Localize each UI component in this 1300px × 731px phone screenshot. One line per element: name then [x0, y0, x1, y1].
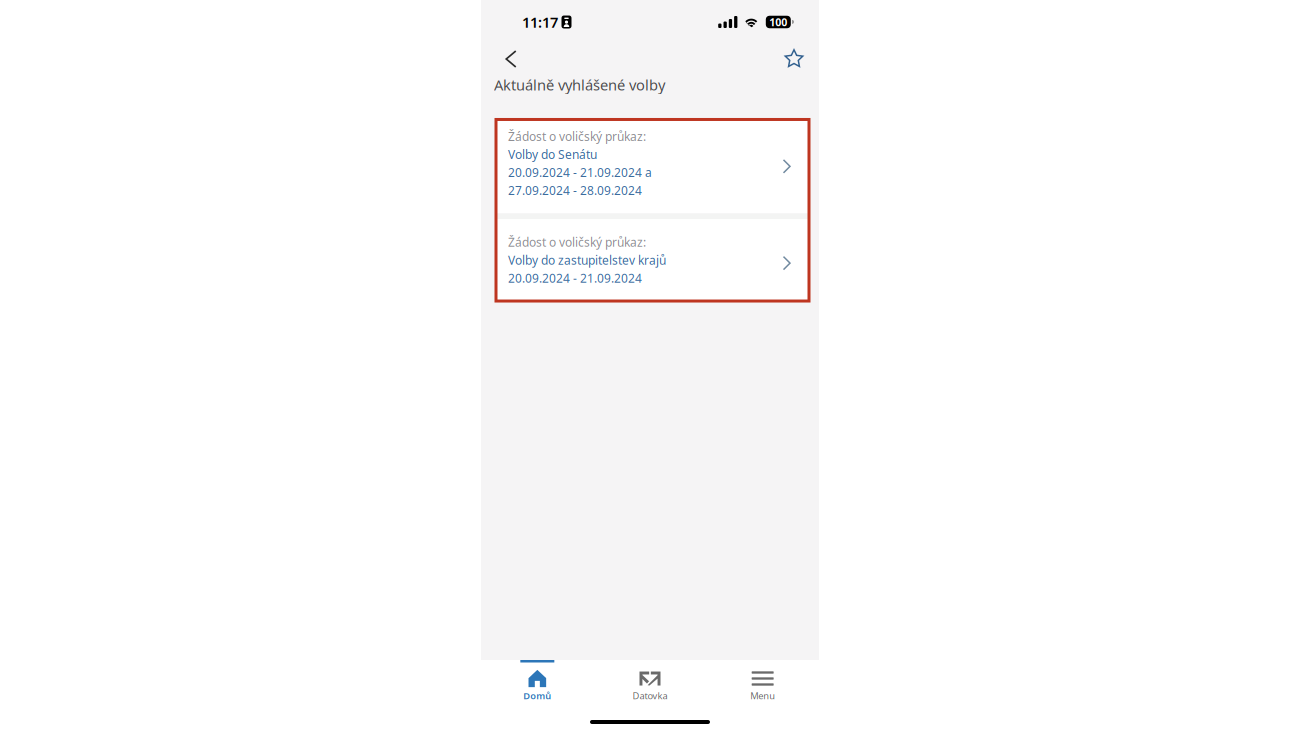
button[interactable]: Žádost o voličský průkaz: — [496, 219, 809, 301]
button[interactable]: Menu — [706, 660, 819, 708]
staticText: Datovka — [632, 689, 667, 702]
staticText: 100 — [769, 15, 787, 29]
button[interactable]: Datovka — [594, 660, 706, 708]
staticText: Aktuálně vyhlášené volby — [494, 75, 665, 94]
staticText: 20.09.2024 - 21.09.2024 a — [508, 164, 652, 180]
staticText: 11:17 — [522, 12, 558, 32]
staticText: Domů — [523, 689, 551, 702]
staticText: Žádost o voličský průkaz: — [508, 128, 646, 144]
staticText: Menu — [750, 689, 775, 702]
staticText: Žádost o voličský průkaz: — [508, 234, 646, 250]
button[interactable]: Back — [494, 44, 528, 74]
button[interactable]: Žádost o voličský průkaz: — [496, 119, 809, 213]
button[interactable]: Domů — [481, 660, 594, 708]
staticText: Volby do Senátu — [508, 146, 597, 162]
staticText: 27.09.2024 - 28.09.2024 — [508, 182, 642, 198]
staticText: 20.09.2024 - 21.09.2024 — [508, 270, 642, 286]
button[interactable]: Add to favourites — [777, 44, 811, 74]
staticText: Volby do zastupitelstev krajů — [508, 252, 666, 268]
